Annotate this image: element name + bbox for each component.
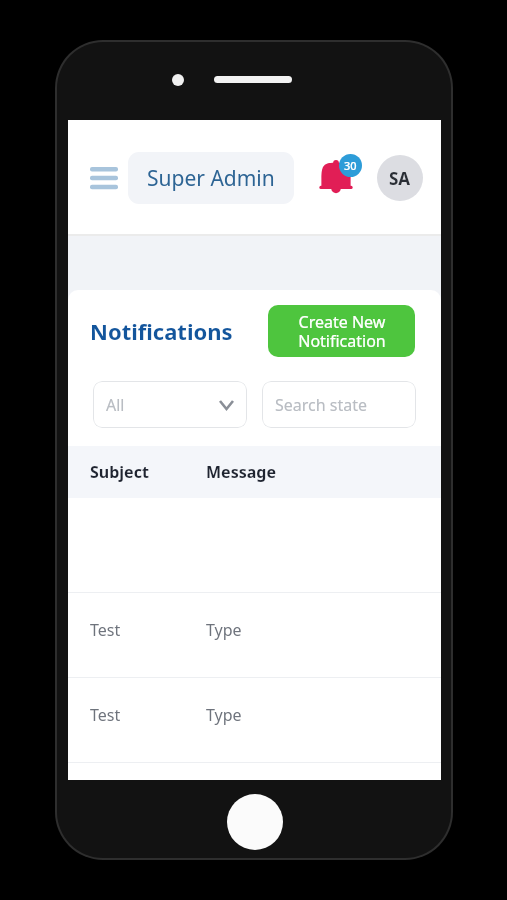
staticText: Create New Notification [298, 311, 386, 352]
staticText: Type [206, 704, 242, 726]
button[interactable]: Search state [262, 381, 416, 428]
staticText: Message [206, 461, 276, 483]
button[interactable]: All [93, 381, 247, 428]
staticText: SA [389, 167, 411, 190]
button[interactable]: Super Admin [128, 152, 294, 204]
staticText: Type [206, 619, 242, 641]
staticText: Notifications [90, 316, 233, 346]
staticText: Subject [90, 461, 206, 483]
staticText: 30 [344, 158, 357, 173]
staticText: Test [90, 619, 206, 641]
button[interactable]: Test [68, 678, 441, 762]
other: Home [227, 794, 283, 850]
staticText: Super Admin [147, 164, 275, 193]
button[interactable]: SA [377, 155, 423, 201]
button[interactable]: Test [68, 593, 441, 677]
staticText: Test [90, 704, 206, 726]
staticText: Search state [275, 394, 368, 416]
button[interactable]: Create New Notification [268, 305, 415, 357]
button[interactable]: Notifications, 30 unread [319, 154, 365, 202]
staticText: All [106, 394, 125, 416]
button[interactable]: Open navigation menu [86, 160, 122, 196]
